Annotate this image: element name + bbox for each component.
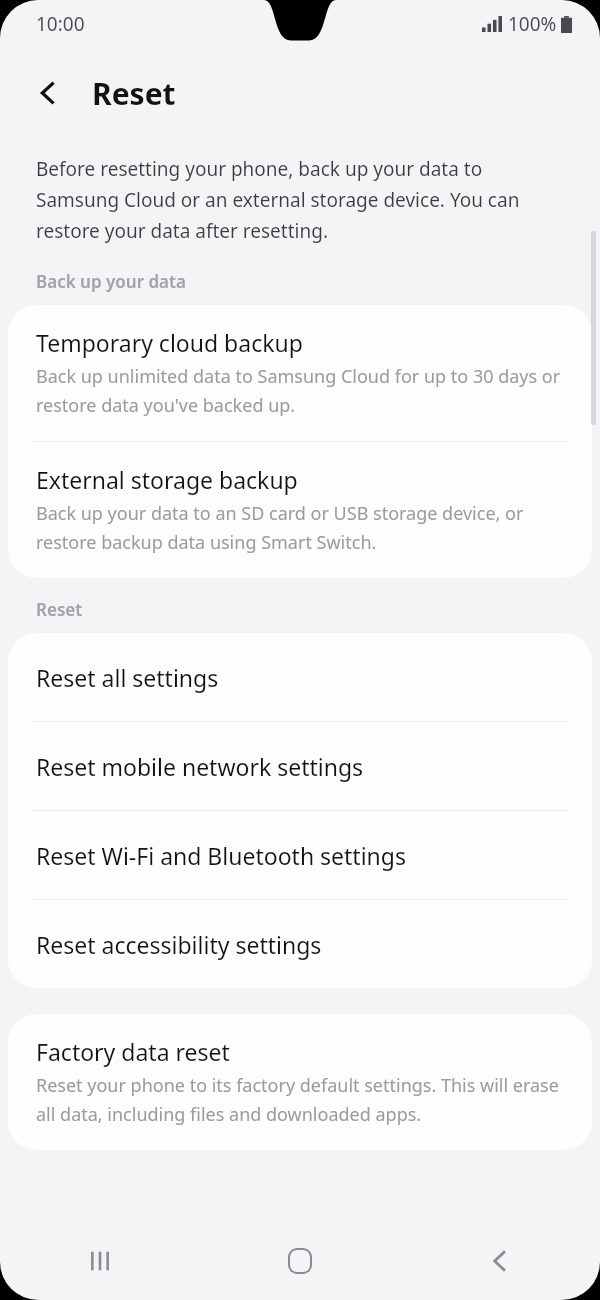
staticText: Reset — [36, 598, 564, 621]
button[interactable]: Reset Wi-Fi and Bluetooth settings — [8, 811, 592, 899]
button[interactable]: Recent apps — [0, 1222, 200, 1300]
staticText: Back up your data to an SD card or USB s… — [36, 501, 562, 554]
staticText: Factory data reset — [36, 1036, 230, 1067]
staticText: Reset — [92, 73, 176, 114]
button[interactable]: Home — [200, 1222, 400, 1300]
staticText: 100% — [508, 11, 557, 37]
button[interactable]: Reset all settings — [8, 633, 592, 721]
staticText: Back up your data — [36, 270, 564, 293]
staticText: External storage backup — [36, 464, 298, 495]
staticText: Reset your phone to its factory default … — [36, 1073, 562, 1126]
button[interactable]: Back — [22, 67, 74, 119]
staticText: Reset mobile network settings — [36, 751, 364, 782]
staticText: Reset accessibility settings — [36, 929, 322, 960]
button[interactable]: Reset mobile network settings — [8, 722, 592, 810]
staticText: Back up unlimited data to Samsung Cloud … — [36, 364, 562, 417]
button[interactable]: Temporary cloud backup — [8, 305, 592, 441]
button[interactable]: Reset accessibility settings — [8, 900, 592, 988]
button[interactable]: Back — [400, 1222, 600, 1300]
staticText: Reset Wi-Fi and Bluetooth settings — [36, 840, 406, 871]
staticText: Temporary cloud backup — [36, 327, 303, 358]
staticText: Before resetting your phone, back up you… — [36, 156, 556, 244]
staticText: Reset all settings — [36, 662, 219, 693]
staticText: 10:00 — [36, 11, 85, 37]
button[interactable]: Factory data reset — [8, 1014, 592, 1150]
button[interactable]: External storage backup — [8, 442, 592, 578]
